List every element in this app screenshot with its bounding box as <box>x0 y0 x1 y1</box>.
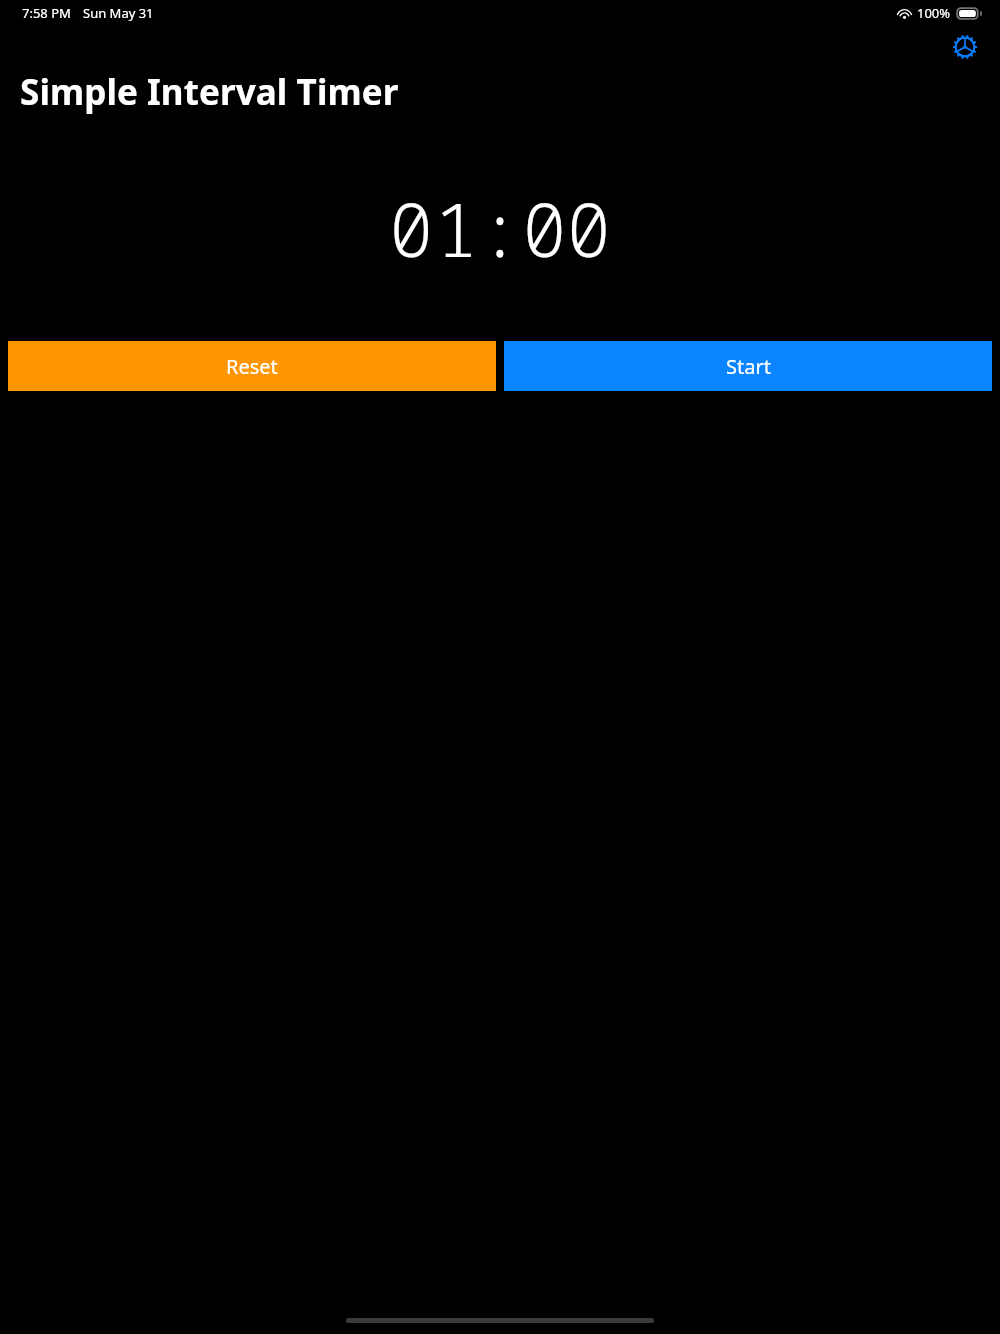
staticText: 100% <box>917 4 951 22</box>
staticText: Start <box>726 353 771 380</box>
staticText: Simple Interval Timer <box>20 68 399 116</box>
button[interactable]: Reset <box>8 341 496 391</box>
button[interactable]: Start <box>504 341 992 391</box>
staticText: 7:58 PM <box>22 4 71 22</box>
staticText: 01:00 <box>389 178 611 279</box>
staticText: Reset <box>226 353 278 380</box>
staticText: Sun May 31 <box>83 4 154 22</box>
button[interactable]: Settings <box>948 30 982 64</box>
